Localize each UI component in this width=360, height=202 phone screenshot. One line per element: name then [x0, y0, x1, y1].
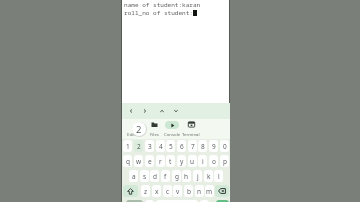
button[interactable]: [142, 108, 148, 114]
staticText: t: [169, 157, 172, 166]
staticText: j: [197, 172, 199, 181]
button[interactable]: h: [182, 170, 191, 182]
staticText: o: [212, 157, 216, 166]
button[interactable]: s: [140, 170, 149, 182]
staticText: e: [148, 157, 152, 166]
button[interactable]: 4: [156, 140, 165, 152]
button[interactable]: 2: [134, 140, 143, 152]
button[interactable]: b: [184, 185, 193, 197]
button[interactable]: c: [163, 185, 172, 197]
button[interactable]: 8: [198, 140, 207, 152]
button[interactable]: 5: [166, 140, 175, 152]
button[interactable]: i: [198, 155, 207, 167]
staticText: k: [207, 172, 211, 181]
staticText: y: [180, 157, 184, 166]
button[interactable]: k: [204, 170, 213, 182]
staticText: w: [136, 157, 142, 166]
staticText: 9: [212, 142, 216, 151]
button[interactable]: t: [166, 155, 175, 167]
button[interactable]: 7: [188, 140, 197, 152]
staticText: z: [144, 187, 148, 196]
staticText: 2: [136, 123, 142, 136]
button[interactable]: 3: [145, 140, 154, 152]
button[interactable]: d: [150, 170, 159, 182]
staticText: p: [223, 157, 227, 166]
button[interactable]: Files: [145, 120, 163, 137]
button[interactable]: e: [145, 155, 154, 167]
button[interactable]: w: [134, 155, 143, 167]
staticText: 3: [148, 142, 152, 151]
staticText: u: [190, 157, 195, 166]
button[interactable]: j: [193, 170, 202, 182]
staticText: h: [184, 172, 189, 181]
button[interactable]: a: [129, 170, 138, 182]
button[interactable]: g: [172, 170, 181, 182]
staticText: 2: [137, 142, 141, 151]
staticText: Terminal: [182, 131, 200, 137]
staticText: n: [197, 187, 202, 196]
staticText: q: [126, 157, 130, 166]
staticText: Files: [150, 131, 159, 137]
button[interactable]: r: [156, 155, 165, 167]
button[interactable]: n: [195, 185, 204, 197]
button[interactable]: 2: [132, 122, 146, 136]
staticText: 0: [223, 142, 227, 151]
staticText: 4: [159, 142, 163, 151]
button[interactable]: [215, 185, 229, 197]
button[interactable]: Console: [163, 120, 181, 137]
staticText: x: [155, 187, 159, 196]
button[interactable]: f: [161, 170, 170, 182]
button[interactable]: Terminal: [182, 120, 200, 137]
button[interactable]: q: [123, 155, 132, 167]
button[interactable]: p: [220, 155, 229, 167]
button[interactable]: x: [152, 185, 161, 197]
button[interactable]: [173, 108, 179, 114]
button[interactable]: 1: [123, 140, 132, 152]
staticText: name of student:karan: [124, 1, 201, 9]
button[interactable]: 9: [209, 140, 218, 152]
staticText: g: [175, 172, 179, 181]
staticText: v: [176, 187, 180, 196]
button[interactable]: v: [173, 185, 182, 197]
button[interactable]: [123, 185, 138, 197]
button[interactable]: y: [177, 155, 186, 167]
button[interactable]: z: [141, 185, 150, 197]
button[interactable]: l: [214, 170, 223, 182]
button[interactable]: u: [188, 155, 197, 167]
button[interactable]: 6: [177, 140, 186, 152]
staticText: 6: [180, 142, 184, 151]
staticText: 1: [126, 142, 130, 151]
button[interactable]: o: [209, 155, 218, 167]
button[interactable]: m: [205, 185, 214, 197]
staticText: Editor: [127, 131, 140, 137]
button[interactable]: [122, 103, 230, 119]
staticText: l: [218, 172, 220, 181]
staticText: a: [132, 172, 136, 181]
staticText: Console: [164, 131, 181, 137]
button[interactable]: [128, 108, 134, 114]
staticText: 5: [169, 142, 173, 151]
button[interactable]: Editor: [124, 120, 142, 137]
staticText: b: [187, 187, 191, 196]
staticText: d: [153, 172, 157, 181]
staticText: r: [159, 157, 162, 166]
staticText: i: [202, 157, 204, 166]
staticText: roll_no of student:: [124, 9, 193, 17]
button[interactable]: 0: [220, 140, 229, 152]
button[interactable]: [159, 108, 165, 114]
staticText: 8: [201, 142, 205, 151]
staticText: f: [164, 172, 167, 181]
staticText: s: [143, 172, 147, 181]
staticText: 7: [191, 142, 195, 151]
staticText: c: [166, 187, 170, 196]
staticText: m: [206, 187, 213, 196]
